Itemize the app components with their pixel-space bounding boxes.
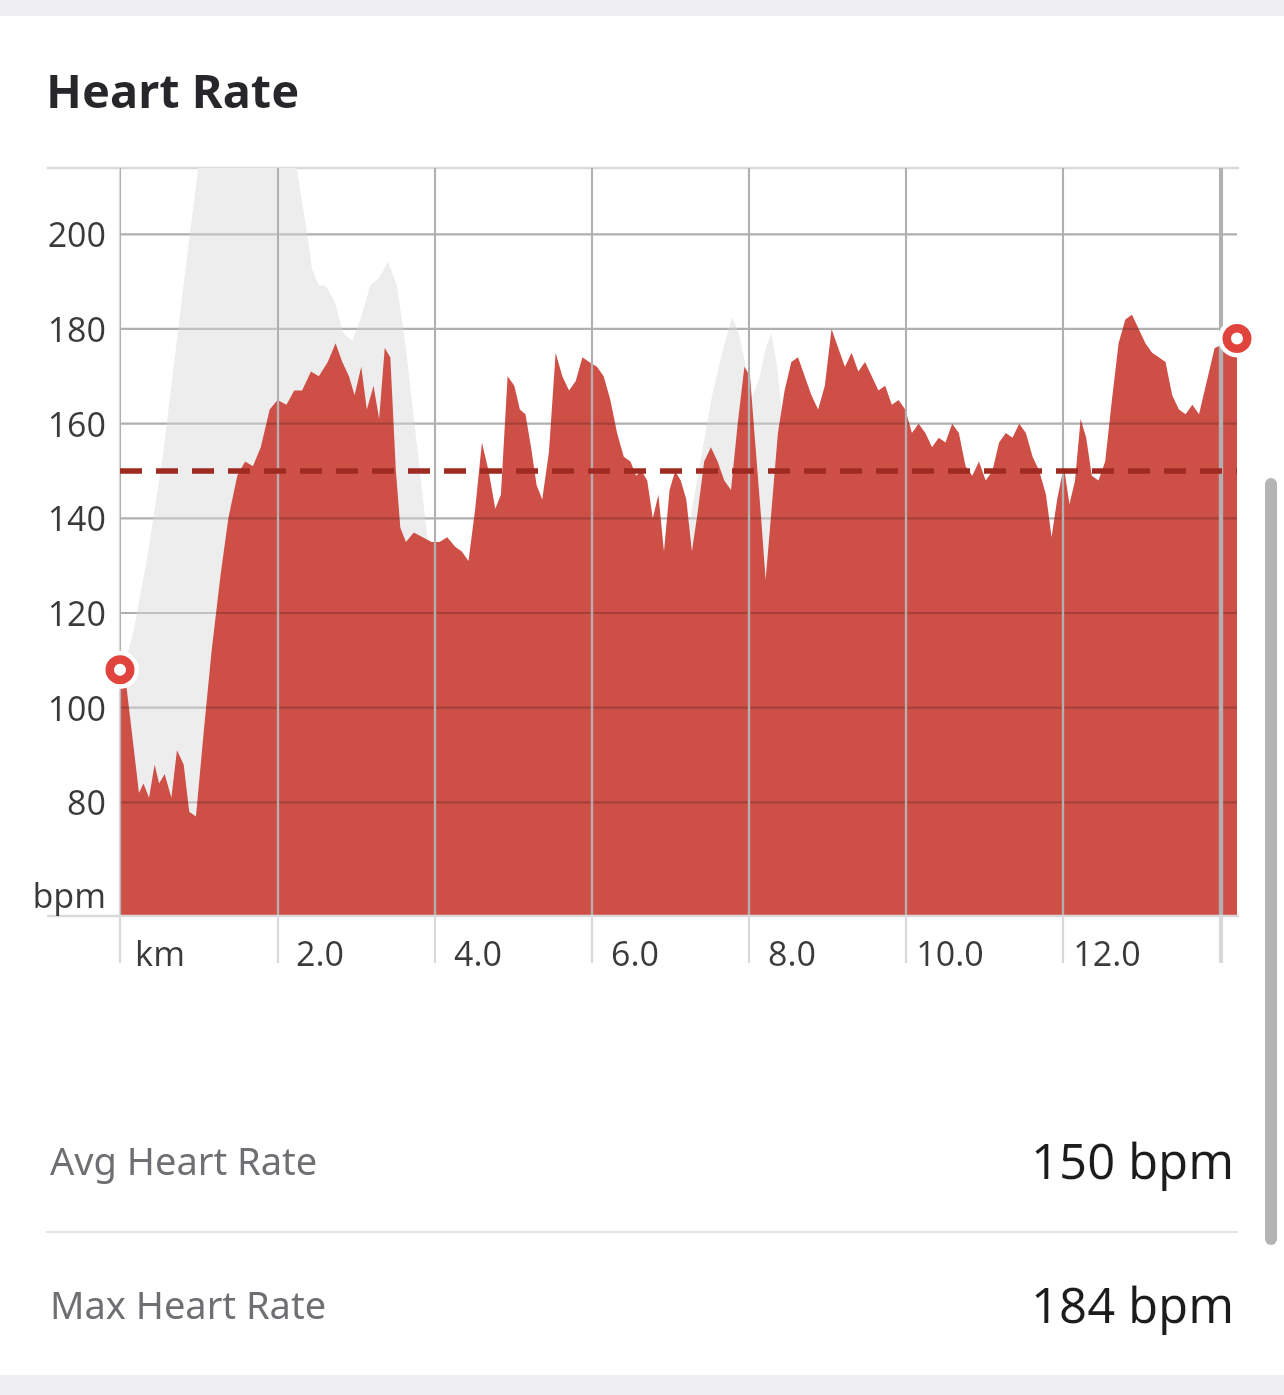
staticText: 150 bpm [1031,1127,1234,1194]
button[interactable]: Max Heart Rate [0,1233,1284,1375]
staticText: bpm [0,872,106,918]
staticText: 200 [0,211,106,257]
staticText: 184 bpm [1031,1271,1234,1338]
other: Heart rate over distance chart [0,122,1284,1081]
staticText: Heart Rate [46,58,300,122]
staticText: 80 [0,779,106,825]
button[interactable]: Avg Heart Rate [0,1089,1284,1231]
staticText: km [90,930,230,976]
staticText: 100 [0,685,106,731]
staticText: 120 [0,590,106,636]
staticText: 4.0 [408,930,548,976]
staticText: Max Heart Rate [50,1278,327,1330]
staticText: 12.0 [1037,930,1177,976]
staticText: 140 [0,495,106,541]
staticText: 2.0 [250,930,390,976]
staticText: 6.0 [565,930,705,976]
staticText: 10.0 [880,930,1020,976]
staticText: Avg Heart Rate [50,1134,318,1186]
staticText: 160 [0,401,106,447]
staticText: 180 [0,306,106,352]
staticText: 8.0 [722,930,862,976]
